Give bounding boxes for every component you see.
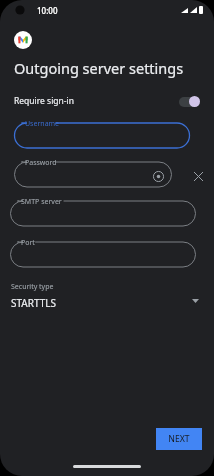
button[interactable]: Password (14, 157, 172, 188)
staticText: Username (25, 119, 60, 129)
button[interactable]: NEXT (156, 428, 202, 450)
button[interactable]: Security type (0, 280, 214, 316)
staticText: Security type (11, 282, 54, 292)
staticText: SMTP server (21, 197, 62, 207)
button[interactable]: Username (14, 118, 190, 149)
staticText: Outgoing server settings (14, 58, 184, 78)
button[interactable]: Require sign-in (0, 90, 214, 112)
button[interactable]: Port (10, 237, 196, 268)
staticText: Password (25, 158, 57, 168)
staticText: STARTTLS (11, 296, 57, 310)
button[interactable]: Show password (151, 169, 165, 183)
staticText: Port (21, 238, 35, 248)
staticText: NEXT (168, 433, 190, 445)
button[interactable]: Clear (190, 168, 206, 184)
staticText: Require sign-in (14, 95, 75, 107)
staticText: 10:00 (37, 5, 58, 16)
button[interactable]: SMTP server (10, 196, 196, 227)
